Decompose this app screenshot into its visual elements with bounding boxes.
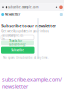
button[interactable]: Menu [54, 4, 58, 11]
button[interactable]: Subscribe [1, 47, 34, 54]
staticText: subscribe.example.com/newsletter [2, 76, 62, 90]
staticText: Newsletter [5, 13, 20, 16]
staticText: Subscribe to our newsletter [1, 23, 56, 28]
button[interactable]: Back [1, 4, 5, 11]
staticText: Thanks for subscribing! [9, 39, 26, 46]
staticText: Get weekly updates in your inbox. [1, 29, 49, 33]
button[interactable]: Lock [5, 4, 8, 11]
button[interactable]: Profile [60, 13, 63, 16]
staticText: you@example.com [2, 34, 24, 41]
staticText: No spam. Unsubscribe at any time. [3, 56, 49, 60]
button[interactable]: Account [58, 4, 63, 11]
staticText: Subscribe [11, 48, 24, 52]
staticText: subscribe.example.com [8, 5, 38, 9]
